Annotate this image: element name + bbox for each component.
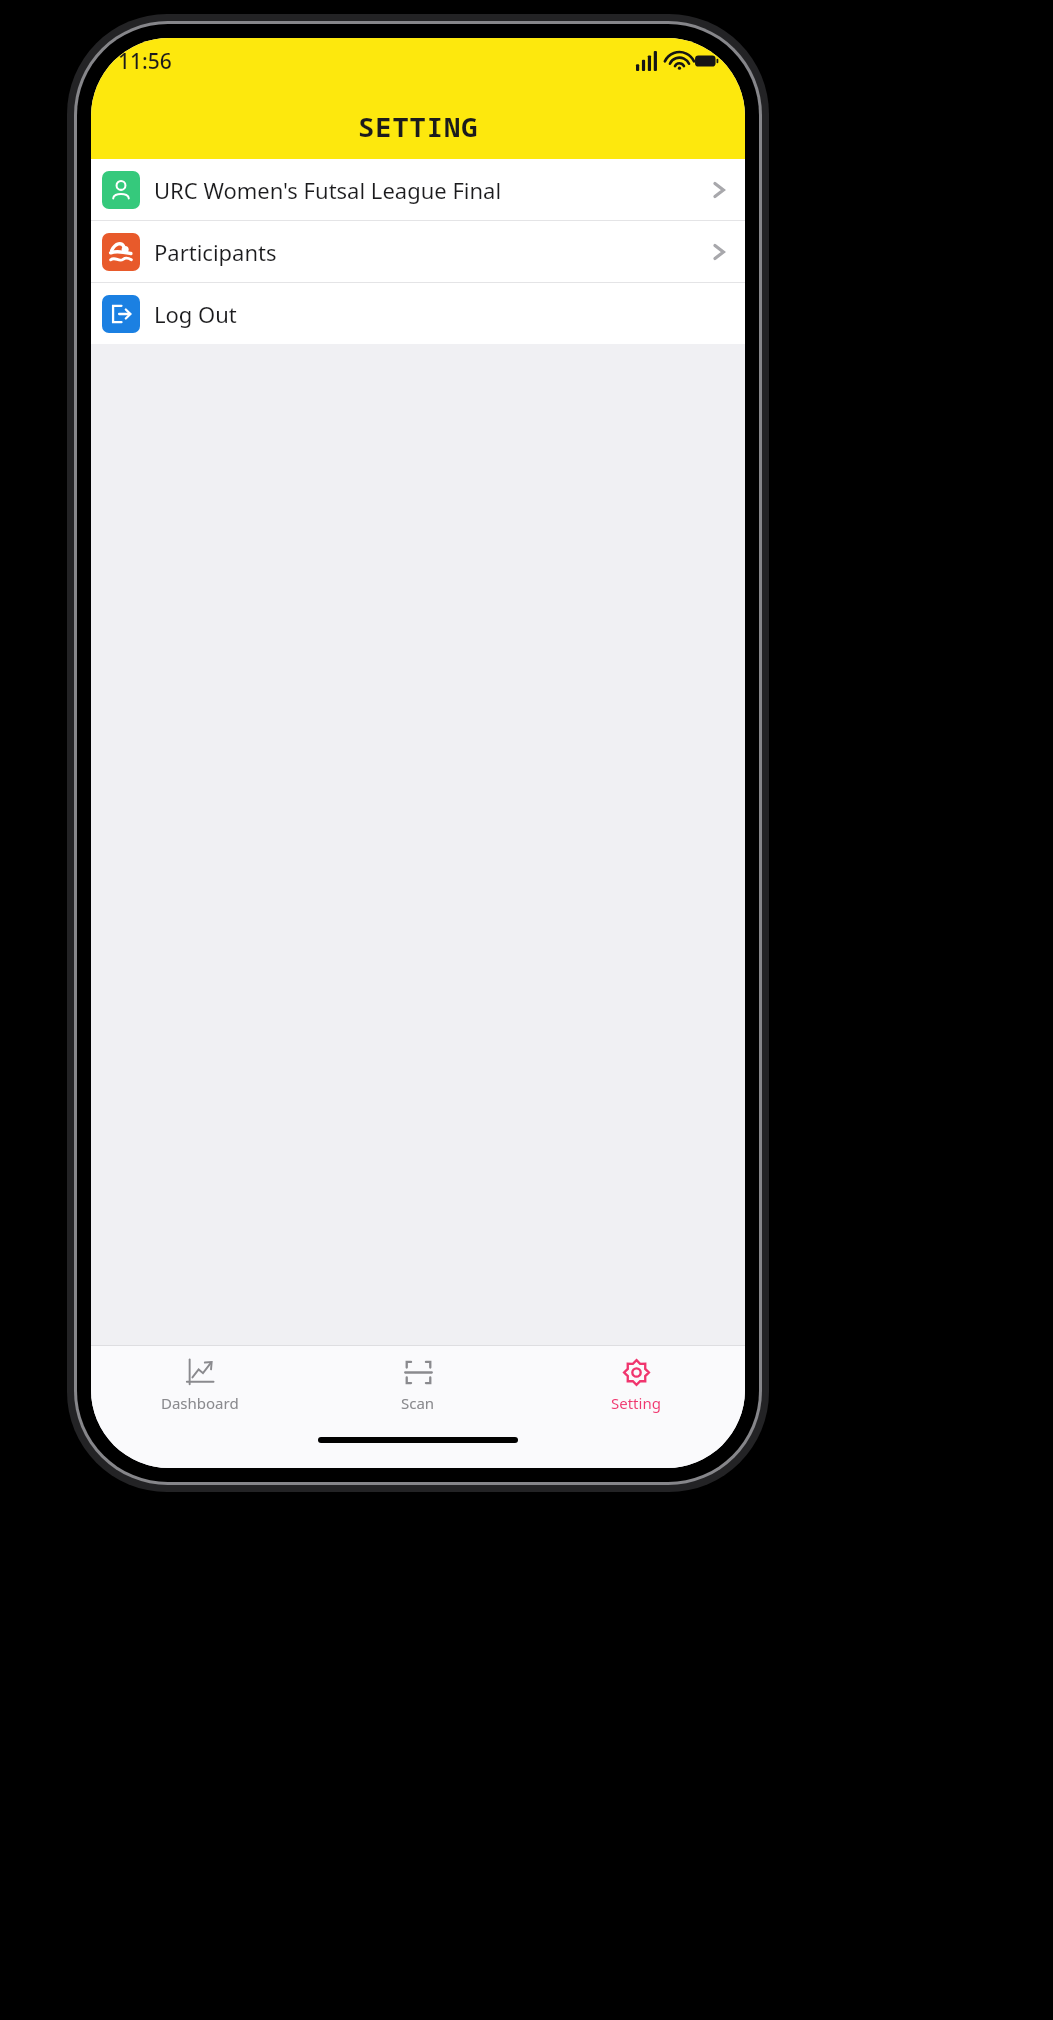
staticText: Log Out	[154, 299, 237, 329]
button[interactable]: Log Out	[91, 283, 745, 344]
button[interactable]: Dashboard	[91, 1346, 309, 1424]
staticText: 11:56	[118, 47, 172, 76]
button[interactable]: Scan	[309, 1346, 527, 1424]
staticText: Scan	[401, 1393, 435, 1413]
staticText: Participants	[154, 237, 277, 267]
staticText: Dashboard	[161, 1393, 239, 1413]
staticText: URC Women's Futsal League Final	[154, 175, 502, 205]
staticText: Setting	[611, 1393, 661, 1413]
button[interactable]: Setting	[527, 1346, 745, 1424]
button[interactable]: Participants	[91, 221, 745, 282]
staticText: SETTING	[358, 108, 479, 145]
button[interactable]: URC Women's Futsal League Final	[91, 159, 745, 220]
